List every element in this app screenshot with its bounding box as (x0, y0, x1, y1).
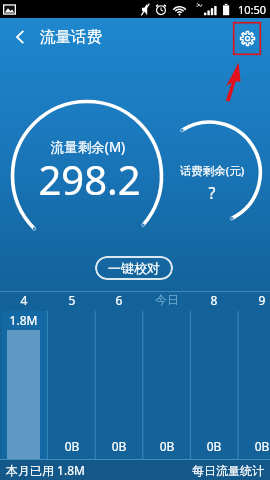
button[interactable]: 一键校对 (95, 256, 173, 280)
staticText: 每日流量统计 (192, 463, 264, 478)
staticText: 6 (95, 292, 143, 308)
staticText: 0B (95, 438, 143, 454)
staticText: 5 (48, 292, 96, 308)
staticText: 9 (238, 292, 270, 308)
staticText: 4 (0, 292, 48, 308)
staticText: 8 (190, 292, 238, 308)
staticText: 298.2 (37, 152, 142, 206)
staticText: 一键校对 (108, 260, 160, 276)
staticText: 0B (143, 438, 191, 454)
staticText: 本月已用 1.8M (6, 462, 85, 478)
staticText: 10:50 (238, 2, 267, 17)
staticText: 流量剩余(M) (43, 138, 133, 156)
staticText: 0B (190, 438, 238, 454)
button[interactable]: Settings (233, 22, 261, 55)
staticText: 0B (238, 438, 270, 454)
staticText: 今日 (143, 292, 191, 307)
staticText: 话费剩余(元) (171, 163, 253, 179)
staticText: 1.8M (1, 312, 46, 328)
staticText: 流量话费 (40, 27, 102, 47)
button[interactable]: Back (0, 18, 38, 56)
staticText: ? (192, 182, 232, 204)
staticText: 0B (48, 438, 96, 454)
